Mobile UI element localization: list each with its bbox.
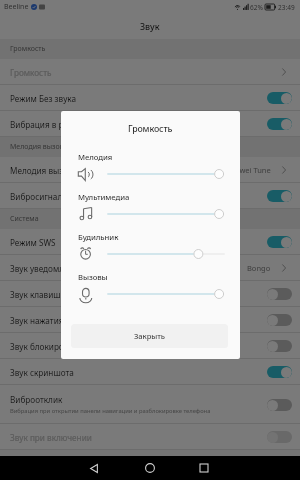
button[interactable]: Вибросигнал bbox=[0, 183, 300, 209]
staticText: Громкость bbox=[10, 44, 46, 54]
staticText: Вибрация в режиме Без звука bbox=[10, 119, 130, 130]
button[interactable]: Home bbox=[137, 456, 163, 480]
button[interactable]: Recent apps bbox=[191, 456, 217, 480]
staticText: Будильник bbox=[78, 232, 119, 242]
staticText: Режим SWS bbox=[10, 237, 56, 248]
staticText: Громкость bbox=[10, 67, 52, 78]
button[interactable]: Звук блокировки экрана bbox=[0, 333, 300, 359]
button[interactable]: Звук уведомления bbox=[0, 255, 300, 281]
button[interactable]: Закрыть bbox=[71, 324, 228, 348]
staticText: Режим Без звука bbox=[10, 93, 77, 104]
staticText: Громкость bbox=[128, 123, 173, 134]
button[interactable]: Вибрация в режиме Без звука bbox=[0, 111, 300, 137]
staticText: Виброотклик bbox=[10, 394, 63, 405]
button[interactable]: Режим Без звука bbox=[0, 85, 300, 111]
button[interactable]: Виброотклик bbox=[0, 385, 300, 424]
staticText: Звук нажатия bbox=[10, 315, 64, 326]
staticText: Звук при включении bbox=[10, 432, 92, 443]
button[interactable]: Звук клавиш bbox=[0, 281, 300, 307]
staticText: Закрыть bbox=[134, 331, 165, 341]
staticText: Вибрация при открытии панели навигации и… bbox=[10, 407, 211, 415]
button[interactable]: Мелодия вызова bbox=[0, 157, 300, 183]
staticText: Huawei Tune bbox=[225, 165, 271, 175]
staticText: Вызовы bbox=[78, 272, 108, 282]
staticText: Звук скриншота bbox=[10, 367, 74, 378]
staticText: Мелодия вызова bbox=[10, 142, 68, 152]
staticText: Звук bbox=[140, 21, 160, 33]
staticText: Мелодия вызова bbox=[10, 165, 78, 176]
button[interactable]: Режим SWS bbox=[0, 229, 300, 255]
button[interactable]: Звук скриншота bbox=[0, 359, 300, 385]
staticText: Мелодия bbox=[78, 152, 113, 162]
staticText: Вибросигнал bbox=[10, 191, 63, 202]
staticText: Система bbox=[10, 214, 39, 224]
staticText: Звук клавиш bbox=[10, 289, 61, 300]
staticText: Beeline bbox=[4, 2, 29, 12]
staticText: Bongo bbox=[247, 263, 271, 273]
staticText: Мультимедиа bbox=[78, 192, 130, 202]
staticText: Звук уведомления bbox=[10, 263, 84, 274]
button[interactable]: Звук нажатия bbox=[0, 307, 300, 333]
staticText: 62% bbox=[250, 3, 263, 12]
staticText: 23:49 bbox=[278, 3, 295, 12]
button[interactable]: Back bbox=[81, 456, 107, 480]
button[interactable]: Громкость bbox=[0, 59, 300, 85]
staticText: Звук блокировки экрана bbox=[10, 341, 108, 352]
button[interactable]: Звук при включении bbox=[0, 424, 300, 450]
